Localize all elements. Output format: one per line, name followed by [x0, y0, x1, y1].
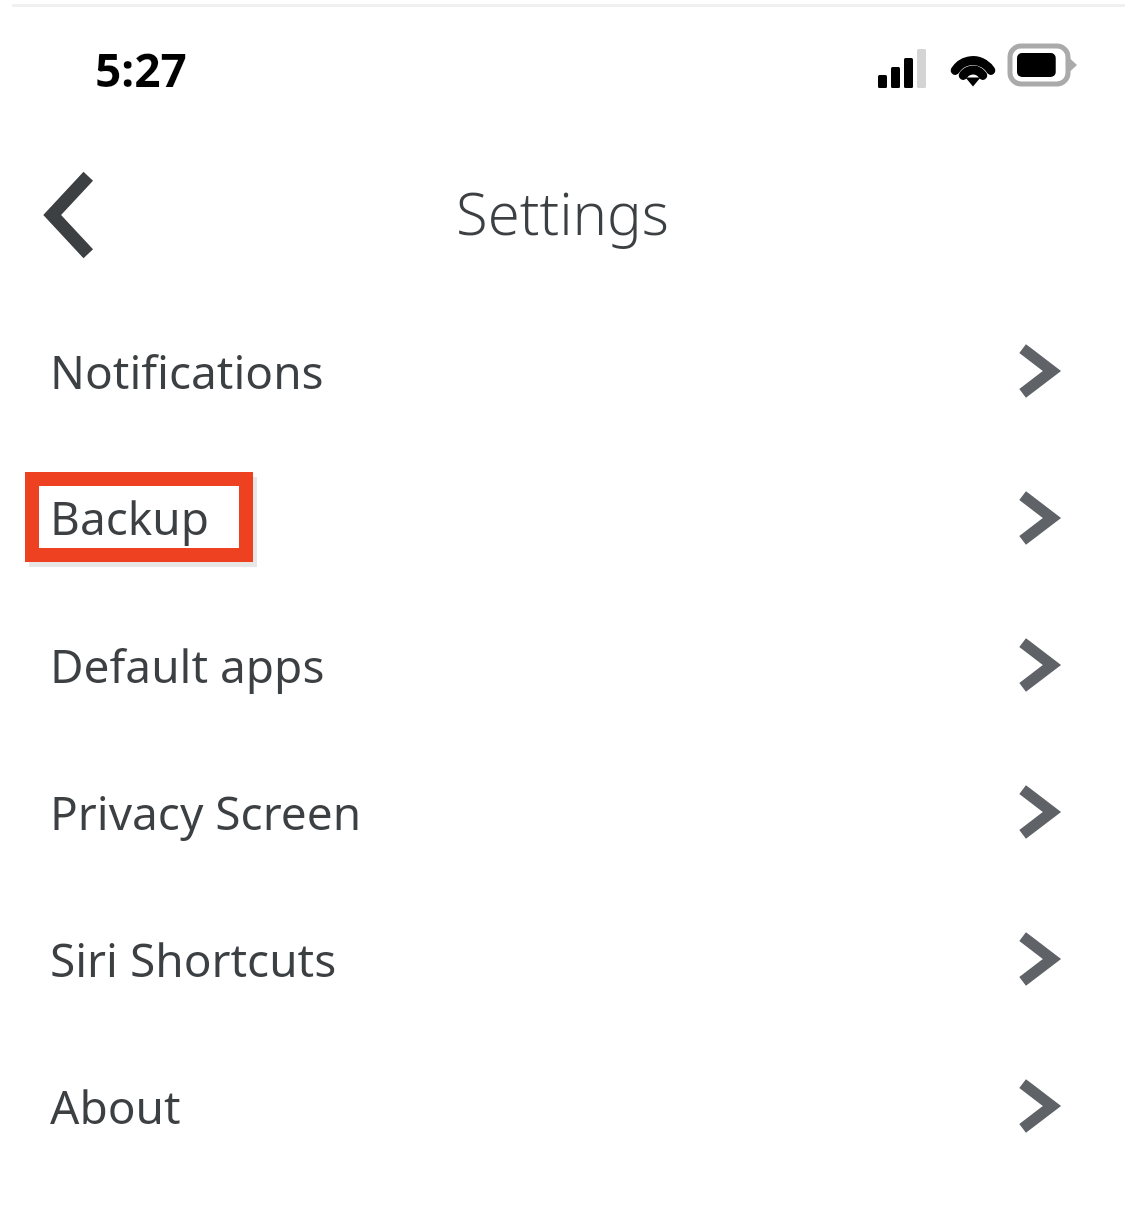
- other: Wi-Fi: [948, 42, 998, 88]
- staticText: Settings: [456, 173, 669, 252]
- staticText: Notifications: [50, 340, 324, 403]
- button[interactable]: Siri Shortcuts: [0, 895, 1125, 1023]
- staticText: Privacy Screen: [50, 781, 362, 844]
- button[interactable]: Default apps: [0, 601, 1125, 729]
- staticText: 5:27: [95, 38, 187, 94]
- button[interactable]: Back: [8, 155, 128, 275]
- staticText: Backup: [50, 487, 210, 550]
- staticText: Backup: [50, 486, 210, 549]
- staticText: Default apps: [50, 634, 325, 697]
- other: Battery: [1010, 44, 1078, 86]
- button[interactable]: About: [0, 1042, 1125, 1170]
- staticText: Siri Shortcuts: [50, 928, 337, 991]
- button[interactable]: Backup: [0, 454, 1125, 582]
- other: Cellular signal: [878, 44, 932, 88]
- button[interactable]: Notifications: [0, 307, 1125, 435]
- staticText: About: [50, 1075, 181, 1138]
- button[interactable]: Privacy Screen: [0, 748, 1125, 876]
